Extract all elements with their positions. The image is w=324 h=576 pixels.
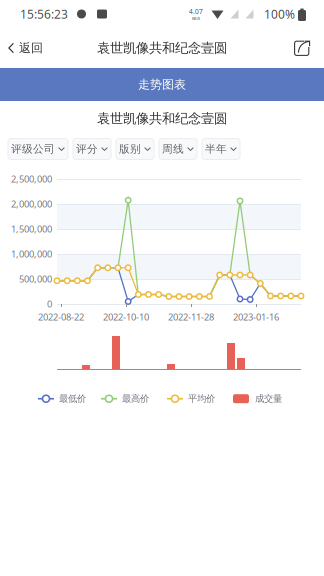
- staticText: 袁世凯像共和纪念壹圆: [97, 110, 227, 127]
- staticText: 1,000,000: [11, 248, 52, 260]
- staticText: 最高价: [122, 393, 149, 404]
- button[interactable]: 评分: [73, 138, 111, 159]
- staticText: KB/S: [192, 16, 200, 21]
- button[interactable]: 分享: [286, 31, 318, 65]
- button[interactable]: 返回: [0, 33, 49, 63]
- staticText: 2022-11-28: [168, 311, 214, 323]
- staticText: 2023-01-16: [233, 311, 279, 323]
- staticText: 半年: [205, 142, 227, 155]
- staticText: 500,000: [19, 273, 52, 285]
- button[interactable]: 走势图表: [0, 68, 324, 101]
- staticText: 2,000,000: [11, 198, 52, 210]
- button[interactable]: 周线: [159, 138, 197, 159]
- staticText: 0: [47, 298, 52, 310]
- staticText: 15:56:23: [20, 6, 68, 22]
- staticText: 2,500,000: [11, 173, 52, 185]
- staticText: 评级公司: [11, 142, 55, 155]
- staticText: 评分: [76, 142, 98, 155]
- staticText: 1,500,000: [11, 223, 52, 235]
- staticText: 返回: [19, 41, 43, 55]
- button[interactable]: 评级公司: [8, 138, 68, 159]
- staticText: 成交量: [255, 393, 282, 404]
- staticText: 周线: [162, 142, 184, 155]
- staticText: 平均价: [188, 393, 215, 404]
- staticText: 走势图表: [138, 77, 186, 92]
- staticText: 4.07: [189, 7, 203, 16]
- staticText: 最低价: [59, 393, 86, 404]
- staticText: 2022-08-22: [38, 311, 84, 323]
- staticText: 2022-10-10: [103, 311, 149, 323]
- button[interactable]: 半年: [202, 138, 240, 159]
- staticText: 版别: [119, 142, 141, 155]
- staticText: 袁世凯像共和纪念壹圆: [97, 40, 227, 56]
- button[interactable]: 版别: [116, 138, 154, 159]
- staticText: 100%: [264, 6, 295, 22]
